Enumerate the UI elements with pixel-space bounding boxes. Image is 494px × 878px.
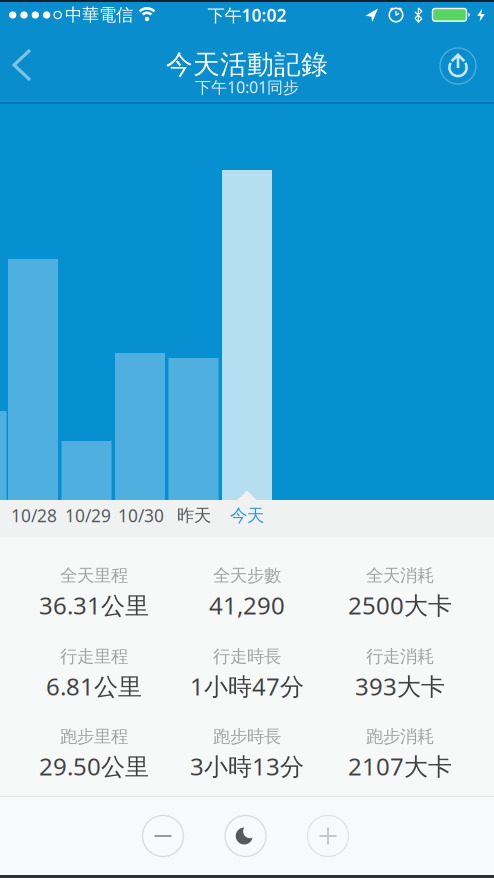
- staticText: 行走消耗: [366, 646, 434, 667]
- staticText: 跑步里程: [60, 726, 128, 747]
- staticText: 10/30: [118, 504, 164, 527]
- staticText: 10/28: [11, 504, 57, 527]
- staticText: 行走時長: [213, 646, 281, 667]
- staticText: 2500大卡: [348, 589, 452, 621]
- staticText: 昨天: [177, 505, 211, 526]
- staticText: 29.50公里: [39, 750, 149, 782]
- button[interactable]: 10/28: [8, 497, 60, 534]
- staticText: 今天: [230, 505, 264, 526]
- staticText: 10/29: [65, 504, 111, 527]
- staticText: 全天消耗: [366, 565, 434, 586]
- staticText: 全天里程: [60, 565, 128, 586]
- staticText: 全天步數: [213, 565, 281, 586]
- staticText: 行走里程: [60, 646, 128, 667]
- button[interactable]: 10/29: [62, 497, 114, 534]
- staticText: 跑步消耗: [366, 726, 434, 747]
- button[interactable]: Back: [6, 44, 46, 86]
- staticText: 393大卡: [355, 670, 445, 702]
- staticText: 36.31公里: [39, 589, 149, 621]
- button[interactable]: Sync: [440, 48, 476, 84]
- staticText: 下午10:01同步: [195, 76, 299, 98]
- button[interactable]: Decrease: [142, 815, 183, 856]
- button[interactable]: 今天: [221, 497, 273, 534]
- staticText: 1小時47分: [190, 670, 304, 702]
- button[interactable]: 昨天: [168, 497, 220, 534]
- staticText: 41,290: [209, 589, 285, 621]
- staticText: 中華電信: [65, 4, 133, 26]
- button[interactable]: Increase: [307, 815, 348, 856]
- staticText: 3小時13分: [190, 750, 304, 782]
- button[interactable]: 10/30: [115, 497, 167, 534]
- button[interactable]: Sleep: [225, 815, 266, 856]
- staticText: 2107大卡: [348, 750, 452, 782]
- staticText: 跑步時長: [213, 726, 281, 747]
- staticText: 6.81公里: [46, 670, 142, 702]
- staticText: 今天活動記錄: [166, 48, 328, 81]
- staticText: 下午10:02: [207, 3, 286, 26]
